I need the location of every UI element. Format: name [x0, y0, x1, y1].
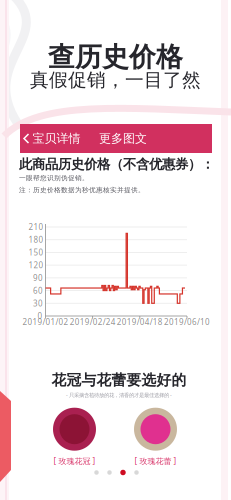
staticText: 更多图文 [99, 131, 147, 146]
staticText: 90 [33, 272, 43, 283]
staticText: 2019/01/02 [22, 317, 68, 327]
staticText: 花冠与花蕾要选好的 [51, 371, 186, 389]
button[interactable]: [ 玫瑰花蕾 ] [125, 408, 185, 466]
button[interactable]: 更多图文 [0, 0, 60, 29]
staticText: 真假促销，一目了然 [30, 68, 201, 91]
staticText: 210 [28, 222, 43, 232]
button[interactable]: 宝贝详情 [0, 0, 65, 29]
staticText: 宝贝详情 [32, 131, 80, 146]
staticText: 30 [33, 298, 43, 309]
button[interactable]: [ 玫瑰花冠 ] [44, 408, 104, 466]
staticText: [ 玫瑰花蕾 ] [134, 456, 176, 466]
staticText: 注：历史价格数据为秒优惠核实并提供。 [19, 186, 145, 194]
staticText: 2019/02/24 [70, 317, 116, 327]
staticText: 查历史价格 [48, 41, 183, 73]
staticText: 一眼帮您识别伪促销。 [19, 174, 89, 182]
staticText: [ 玫瑰花冠 ] [53, 456, 95, 466]
staticText: 180 [28, 234, 43, 245]
staticText: 120 [28, 260, 43, 270]
staticText: - 只采摘含苞待放的花，清香的才是最佳选择的 - [66, 391, 172, 399]
staticText: 2019/06/10 [164, 317, 210, 327]
staticText: 60 [33, 285, 43, 296]
staticText: 0 [37, 311, 42, 321]
staticText: 150 [28, 247, 43, 258]
staticText: 2019/04/18 [117, 317, 163, 327]
staticText: 此商品历史价格（不含优惠券）： [19, 156, 214, 172]
